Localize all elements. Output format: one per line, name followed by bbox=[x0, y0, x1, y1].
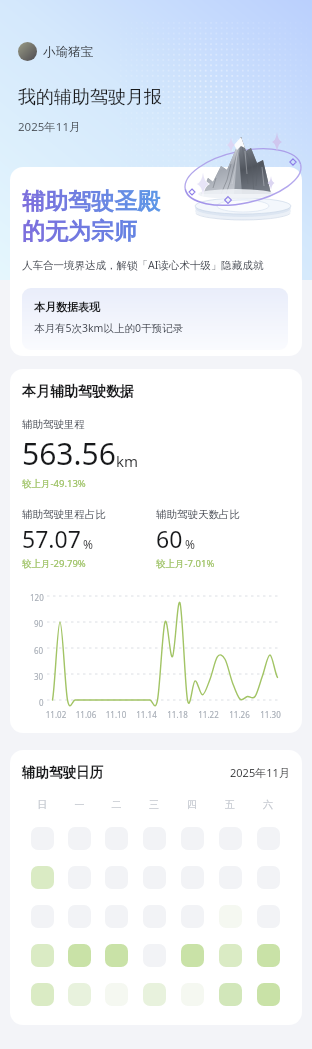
button[interactable] bbox=[257, 866, 280, 889]
button[interactable] bbox=[105, 866, 128, 889]
staticText: 三 bbox=[135, 798, 173, 811]
button[interactable] bbox=[219, 944, 242, 967]
button[interactable] bbox=[31, 905, 54, 928]
button[interactable] bbox=[31, 827, 54, 850]
button[interactable] bbox=[143, 983, 166, 1006]
staticText: 120 bbox=[30, 592, 44, 603]
button[interactable] bbox=[31, 866, 54, 889]
staticText: 本月辅助驾驶数据 bbox=[22, 383, 134, 401]
staticText: 辅助驾驶日历 bbox=[22, 764, 103, 781]
staticText: 小瑜猪宝 bbox=[43, 44, 93, 60]
button[interactable] bbox=[257, 905, 280, 928]
button[interactable] bbox=[105, 944, 128, 967]
button[interactable] bbox=[68, 905, 91, 928]
button[interactable] bbox=[31, 944, 54, 967]
staticText: 辅助驾驶里程占比 bbox=[22, 508, 106, 521]
button[interactable] bbox=[143, 905, 166, 928]
button[interactable] bbox=[143, 944, 166, 967]
button[interactable] bbox=[68, 983, 91, 1006]
staticText: 11.18 bbox=[162, 709, 193, 720]
staticText: 较上月-29.79% bbox=[22, 557, 86, 570]
button[interactable] bbox=[219, 905, 242, 928]
staticText: 五 bbox=[211, 798, 249, 811]
staticText: % bbox=[83, 536, 93, 552]
button[interactable]: 小瑜猪宝 bbox=[18, 42, 101, 61]
button[interactable] bbox=[31, 983, 54, 1006]
staticText: 人车合一境界达成，解锁「AI读心术十级」隐藏成就 bbox=[22, 258, 264, 272]
staticText: 0 bbox=[39, 697, 44, 708]
button[interactable] bbox=[105, 905, 128, 928]
staticText: 563.56 bbox=[22, 433, 116, 474]
staticText: 一 bbox=[61, 798, 98, 811]
staticText: 四 bbox=[173, 798, 211, 811]
button[interactable] bbox=[181, 944, 204, 967]
button[interactable] bbox=[105, 983, 128, 1006]
button[interactable] bbox=[257, 827, 280, 850]
button[interactable] bbox=[68, 866, 91, 889]
staticText: 60 bbox=[156, 523, 183, 554]
staticText: 较上月-7.01% bbox=[156, 557, 215, 570]
button[interactable] bbox=[143, 866, 166, 889]
button[interactable] bbox=[219, 827, 242, 850]
staticText: 11.26 bbox=[224, 709, 255, 720]
staticText: 57.07 bbox=[22, 523, 81, 554]
staticText: 我的辅助驾驶月报 bbox=[18, 86, 162, 109]
button[interactable] bbox=[105, 827, 128, 850]
staticText: 11.10 bbox=[101, 709, 131, 720]
staticText: km bbox=[116, 451, 139, 471]
staticText: 90 bbox=[34, 618, 44, 629]
button[interactable] bbox=[257, 944, 280, 967]
staticText: 本月数据表现 bbox=[34, 300, 100, 314]
staticText: 辅助驾驶圣殿 bbox=[22, 187, 160, 216]
staticText: 的无为宗师 bbox=[22, 217, 137, 246]
staticText: 11.30 bbox=[255, 709, 286, 720]
button[interactable] bbox=[143, 827, 166, 850]
staticText: 11.22 bbox=[193, 709, 224, 720]
staticText: 二 bbox=[98, 798, 135, 811]
staticText: % bbox=[185, 536, 195, 552]
button[interactable] bbox=[68, 827, 91, 850]
button[interactable] bbox=[257, 983, 280, 1006]
staticText: 本月有5次3km以上的0干预记录 bbox=[34, 321, 183, 335]
staticText: 日 bbox=[24, 798, 61, 811]
button[interactable] bbox=[219, 866, 242, 889]
button[interactable] bbox=[219, 983, 242, 1006]
staticText: 11.14 bbox=[131, 709, 162, 720]
staticText: 六 bbox=[249, 798, 287, 811]
button[interactable] bbox=[181, 827, 204, 850]
staticText: 11.02 bbox=[41, 709, 71, 720]
button[interactable] bbox=[181, 866, 204, 889]
staticText: 2025年11月 bbox=[230, 765, 290, 780]
staticText: 辅助驾驶天数占比 bbox=[156, 508, 240, 521]
staticText: 辅助驾驶里程 bbox=[22, 418, 85, 431]
button[interactable] bbox=[181, 983, 204, 1006]
button[interactable] bbox=[181, 905, 204, 928]
staticText: 11.06 bbox=[71, 709, 101, 720]
button[interactable] bbox=[68, 944, 91, 967]
staticText: 60 bbox=[34, 645, 44, 656]
staticText: 较上月-49.13% bbox=[22, 477, 86, 490]
staticText: 2025年11月 bbox=[18, 119, 81, 135]
staticText: 30 bbox=[34, 671, 44, 682]
